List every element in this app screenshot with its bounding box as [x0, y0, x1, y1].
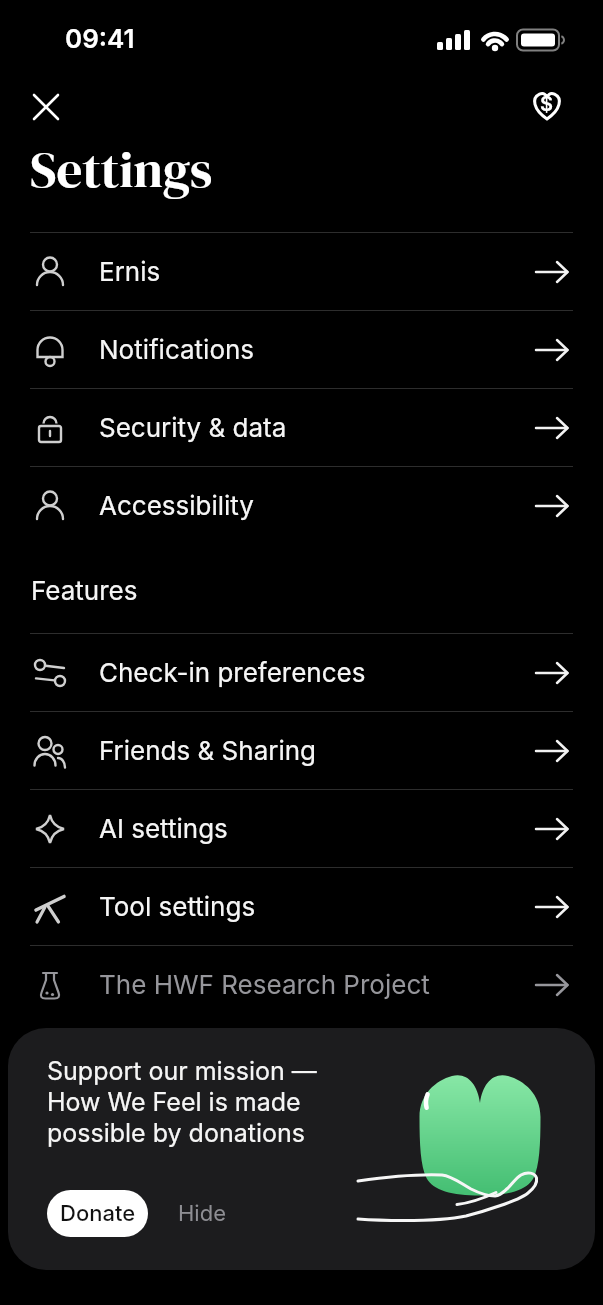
staticText: Tool settings — [99, 891, 256, 922]
staticText: Check-in preferences — [99, 657, 366, 688]
button[interactable]: Notifications — [0, 311, 603, 388]
button[interactable]: Accessibility — [0, 467, 603, 544]
button[interactable]: The HWF Research Project — [0, 946, 603, 1023]
staticText: Security & data — [99, 412, 287, 443]
button[interactable]: Ernis — [0, 233, 603, 310]
button[interactable]: Security & data — [0, 389, 603, 466]
button[interactable]: $ — [526, 85, 568, 127]
button[interactable]: AI settings — [0, 790, 603, 867]
staticText: Notifications — [99, 334, 255, 365]
staticText: Accessibility — [99, 490, 254, 521]
staticText: AI settings — [99, 813, 228, 844]
button[interactable]: Friends & Sharing — [0, 712, 603, 789]
staticText: $ — [540, 92, 554, 116]
button[interactable]: Tool settings — [0, 868, 603, 945]
staticText: The HWF Research Project — [99, 969, 430, 1000]
staticText: 09:41 — [65, 23, 135, 54]
staticText: Donate — [60, 1200, 136, 1227]
staticText: Settings — [30, 134, 213, 204]
staticText: Friends & Sharing — [99, 735, 317, 766]
button[interactable]: Hide — [178, 1200, 226, 1227]
button[interactable]: Donate — [47, 1190, 148, 1237]
button[interactable] — [25, 86, 67, 128]
staticText: Features — [31, 575, 138, 606]
staticText: Ernis — [99, 256, 161, 287]
button[interactable]: Check-in preferences — [0, 634, 603, 711]
staticText: Hide — [178, 1200, 226, 1227]
staticText: Support our mission — How We Feel is mad… — [47, 1056, 317, 1148]
